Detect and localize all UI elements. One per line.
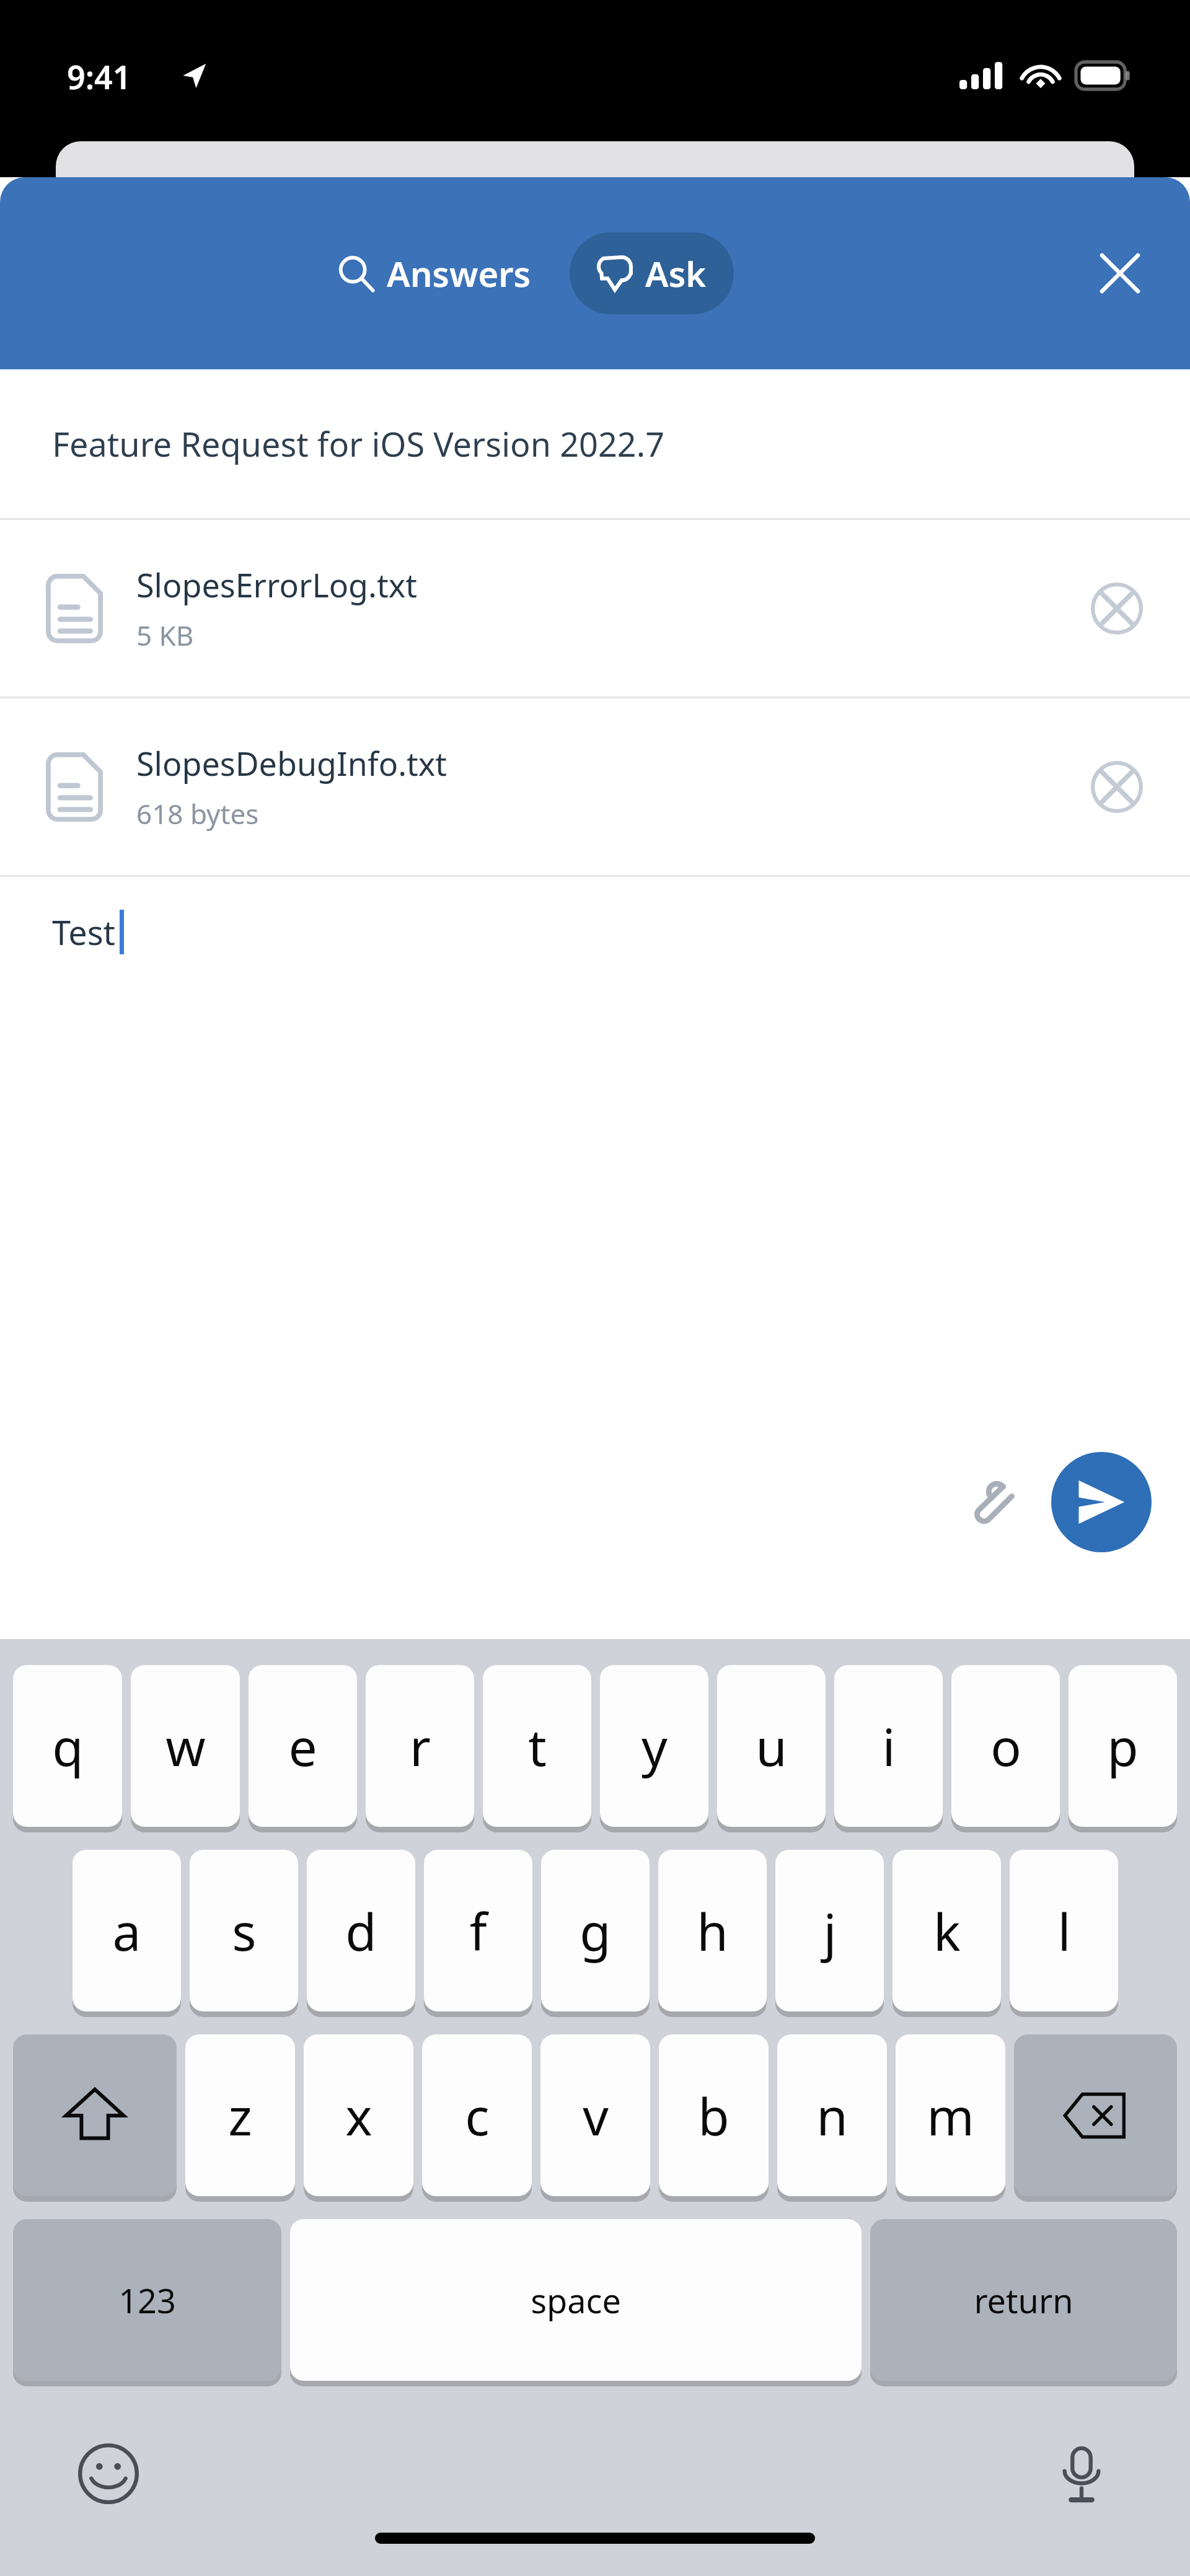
button[interactable]: c xyxy=(422,2034,532,2196)
staticText: f xyxy=(469,1896,487,1966)
button[interactable]: d xyxy=(307,1850,415,2011)
staticText: a xyxy=(112,1896,141,1966)
staticText: q xyxy=(52,1712,84,1781)
button[interactable]: Answers xyxy=(322,236,547,310)
button[interactable]: r xyxy=(366,1665,474,1827)
staticText: k xyxy=(933,1896,961,1966)
button[interactable]: Feature Request for iOS Version 2022.7 xyxy=(0,369,1190,518)
button[interactable]: y xyxy=(600,1665,708,1827)
staticText: 5 KB xyxy=(136,617,194,654)
button[interactable]: Dictation xyxy=(1041,2433,1122,2514)
button[interactable]: Emoji xyxy=(68,2433,149,2514)
staticText: o xyxy=(990,1712,1021,1781)
button[interactable]: SlopesDebugInfo.txt xyxy=(0,698,1190,875)
button[interactable]: return xyxy=(870,2219,1177,2381)
staticText: p xyxy=(1107,1712,1139,1781)
staticText: 618 bytes xyxy=(136,795,259,832)
staticText: c xyxy=(465,2081,490,2150)
staticText: g xyxy=(580,1896,611,1966)
button[interactable]: m xyxy=(896,2034,1005,2196)
button[interactable]: Ask xyxy=(570,232,734,314)
staticText: z xyxy=(228,2081,252,2150)
staticText: SlopesDebugInfo.txt xyxy=(136,741,447,785)
button[interactable]: Remove attachment xyxy=(1082,752,1152,822)
staticText: 9:41 xyxy=(67,55,131,99)
staticText: Ask xyxy=(645,250,707,297)
staticText: n xyxy=(816,2081,848,2150)
button[interactable]: p xyxy=(1069,1665,1177,1827)
staticText: Feature Request for iOS Version 2022.7 xyxy=(52,421,665,467)
staticText: u xyxy=(756,1712,787,1781)
button[interactable]: t xyxy=(483,1665,591,1827)
staticText: d xyxy=(345,1896,377,1966)
staticText: Test xyxy=(52,909,116,955)
button[interactable]: s xyxy=(190,1850,298,2011)
button[interactable]: o xyxy=(951,1665,1060,1827)
button[interactable]: j xyxy=(775,1850,884,2011)
staticText: b xyxy=(698,2081,729,2150)
button[interactable]: l xyxy=(1010,1850,1118,2011)
button[interactable]: e xyxy=(249,1665,357,1827)
staticText: SlopesErrorLog.txt xyxy=(136,563,418,607)
button[interactable]: Backspace xyxy=(1014,2034,1177,2196)
button[interactable]: SlopesErrorLog.txt xyxy=(0,520,1190,697)
button[interactable]: n xyxy=(777,2034,887,2196)
button[interactable]: i xyxy=(834,1665,943,1827)
staticText: i xyxy=(882,1712,896,1781)
button[interactable]: h xyxy=(658,1850,767,2011)
staticText: w xyxy=(165,1712,206,1781)
button[interactable]: Shift xyxy=(13,2034,177,2196)
button[interactable]: v xyxy=(540,2034,650,2196)
staticText: m xyxy=(927,2081,974,2150)
staticText: h xyxy=(697,1896,728,1966)
button[interactable]: f xyxy=(424,1850,532,2011)
button[interactable]: k xyxy=(892,1850,1001,2011)
button[interactable]: g xyxy=(541,1850,650,2011)
button[interactable]: z xyxy=(185,2034,295,2196)
staticText: Answers xyxy=(387,250,531,297)
button[interactable]: 123 xyxy=(13,2219,281,2381)
button[interactable]: w xyxy=(131,1665,240,1827)
staticText: l xyxy=(1057,1896,1071,1966)
button[interactable]: Send xyxy=(1051,1452,1152,1552)
button[interactable]: a xyxy=(73,1850,181,2011)
staticText: t xyxy=(528,1712,547,1781)
button[interactable]: Attach file xyxy=(948,1462,1029,1542)
staticText: y xyxy=(641,1712,668,1781)
button[interactable]: space xyxy=(290,2219,862,2381)
staticText: return xyxy=(974,2277,1073,2323)
button[interactable]: Close xyxy=(1086,239,1154,307)
button[interactable]: x xyxy=(304,2034,413,2196)
staticText: x xyxy=(345,2081,372,2150)
button[interactable]: b xyxy=(659,2034,769,2196)
button[interactable]: u xyxy=(717,1665,826,1827)
button[interactable]: Remove attachment xyxy=(1082,574,1152,643)
staticText: v xyxy=(583,2081,609,2150)
staticText: 123 xyxy=(118,2277,176,2323)
staticText: j xyxy=(823,1896,837,1966)
staticText: s xyxy=(232,1896,257,1966)
staticText: e xyxy=(288,1712,317,1781)
staticText: space xyxy=(531,2277,621,2323)
staticText: r xyxy=(410,1712,431,1781)
button[interactable]: q xyxy=(13,1665,122,1827)
